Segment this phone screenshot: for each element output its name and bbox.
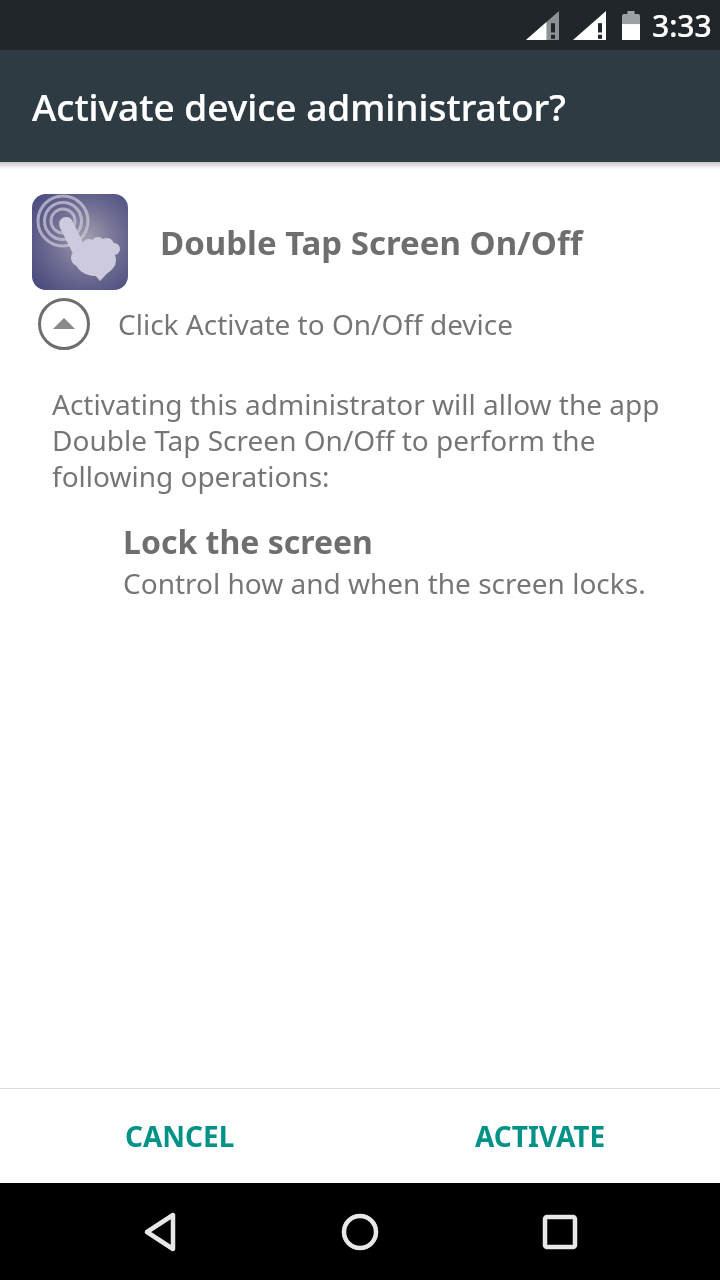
staticText: Lock the screen — [123, 520, 373, 564]
staticText: Click Activate to On/Off device — [118, 305, 514, 343]
button[interactable] — [130, 1202, 190, 1262]
staticText: Activating this administrator will allow… — [52, 385, 660, 495]
button[interactable]: ACTIVATE — [360, 1089, 720, 1183]
button[interactable] — [530, 1202, 590, 1262]
button[interactable]: CANCEL — [0, 1089, 360, 1183]
button[interactable] — [330, 1202, 390, 1262]
staticText: ACTIVATE — [475, 1117, 606, 1155]
staticText: Activate device administrator? — [32, 81, 566, 131]
staticText: 3:33 — [652, 5, 712, 46]
button[interactable] — [38, 298, 90, 350]
staticText: Control how and when the screen locks. — [123, 564, 646, 602]
staticText: CANCEL — [125, 1117, 235, 1155]
staticText: Double Tap Screen On/Off — [160, 220, 583, 265]
